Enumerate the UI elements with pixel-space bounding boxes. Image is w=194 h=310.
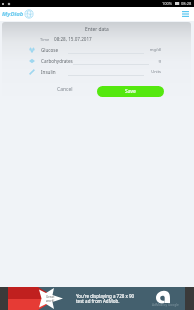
button[interactable]: Save <box>97 86 164 97</box>
button[interactable]: Menu <box>179 7 191 21</box>
staticText: Units <box>149 69 161 74</box>
button[interactable]: Carbohydrates <box>2 55 191 66</box>
staticText: MyDiab <box>2 10 24 18</box>
button[interactable]: Glucose <box>2 44 191 55</box>
staticText: mg/dl <box>149 47 161 52</box>
staticText: You're displaying a 728 x 90 test ad fro… <box>76 293 135 305</box>
staticText: 100% <box>162 1 173 6</box>
staticText: AdMob by Google <box>152 303 179 307</box>
staticText: Cancel <box>57 86 73 93</box>
staticText: 08:28 <box>181 1 192 6</box>
staticText: Great work! <box>46 295 55 303</box>
staticText: Carbohydrates <box>41 58 73 64</box>
staticText: Time <box>40 37 50 42</box>
button[interactable]: Cancel <box>52 84 78 95</box>
staticText: Enter data <box>85 26 109 33</box>
staticText: Save <box>125 88 136 95</box>
staticText: 08:28, 15.07.2017 <box>54 36 92 42</box>
staticText: Glucose <box>41 47 59 53</box>
staticText: g <box>154 58 161 63</box>
staticText: Insulin <box>41 69 56 75</box>
button[interactable]: Insulin <box>2 66 191 77</box>
